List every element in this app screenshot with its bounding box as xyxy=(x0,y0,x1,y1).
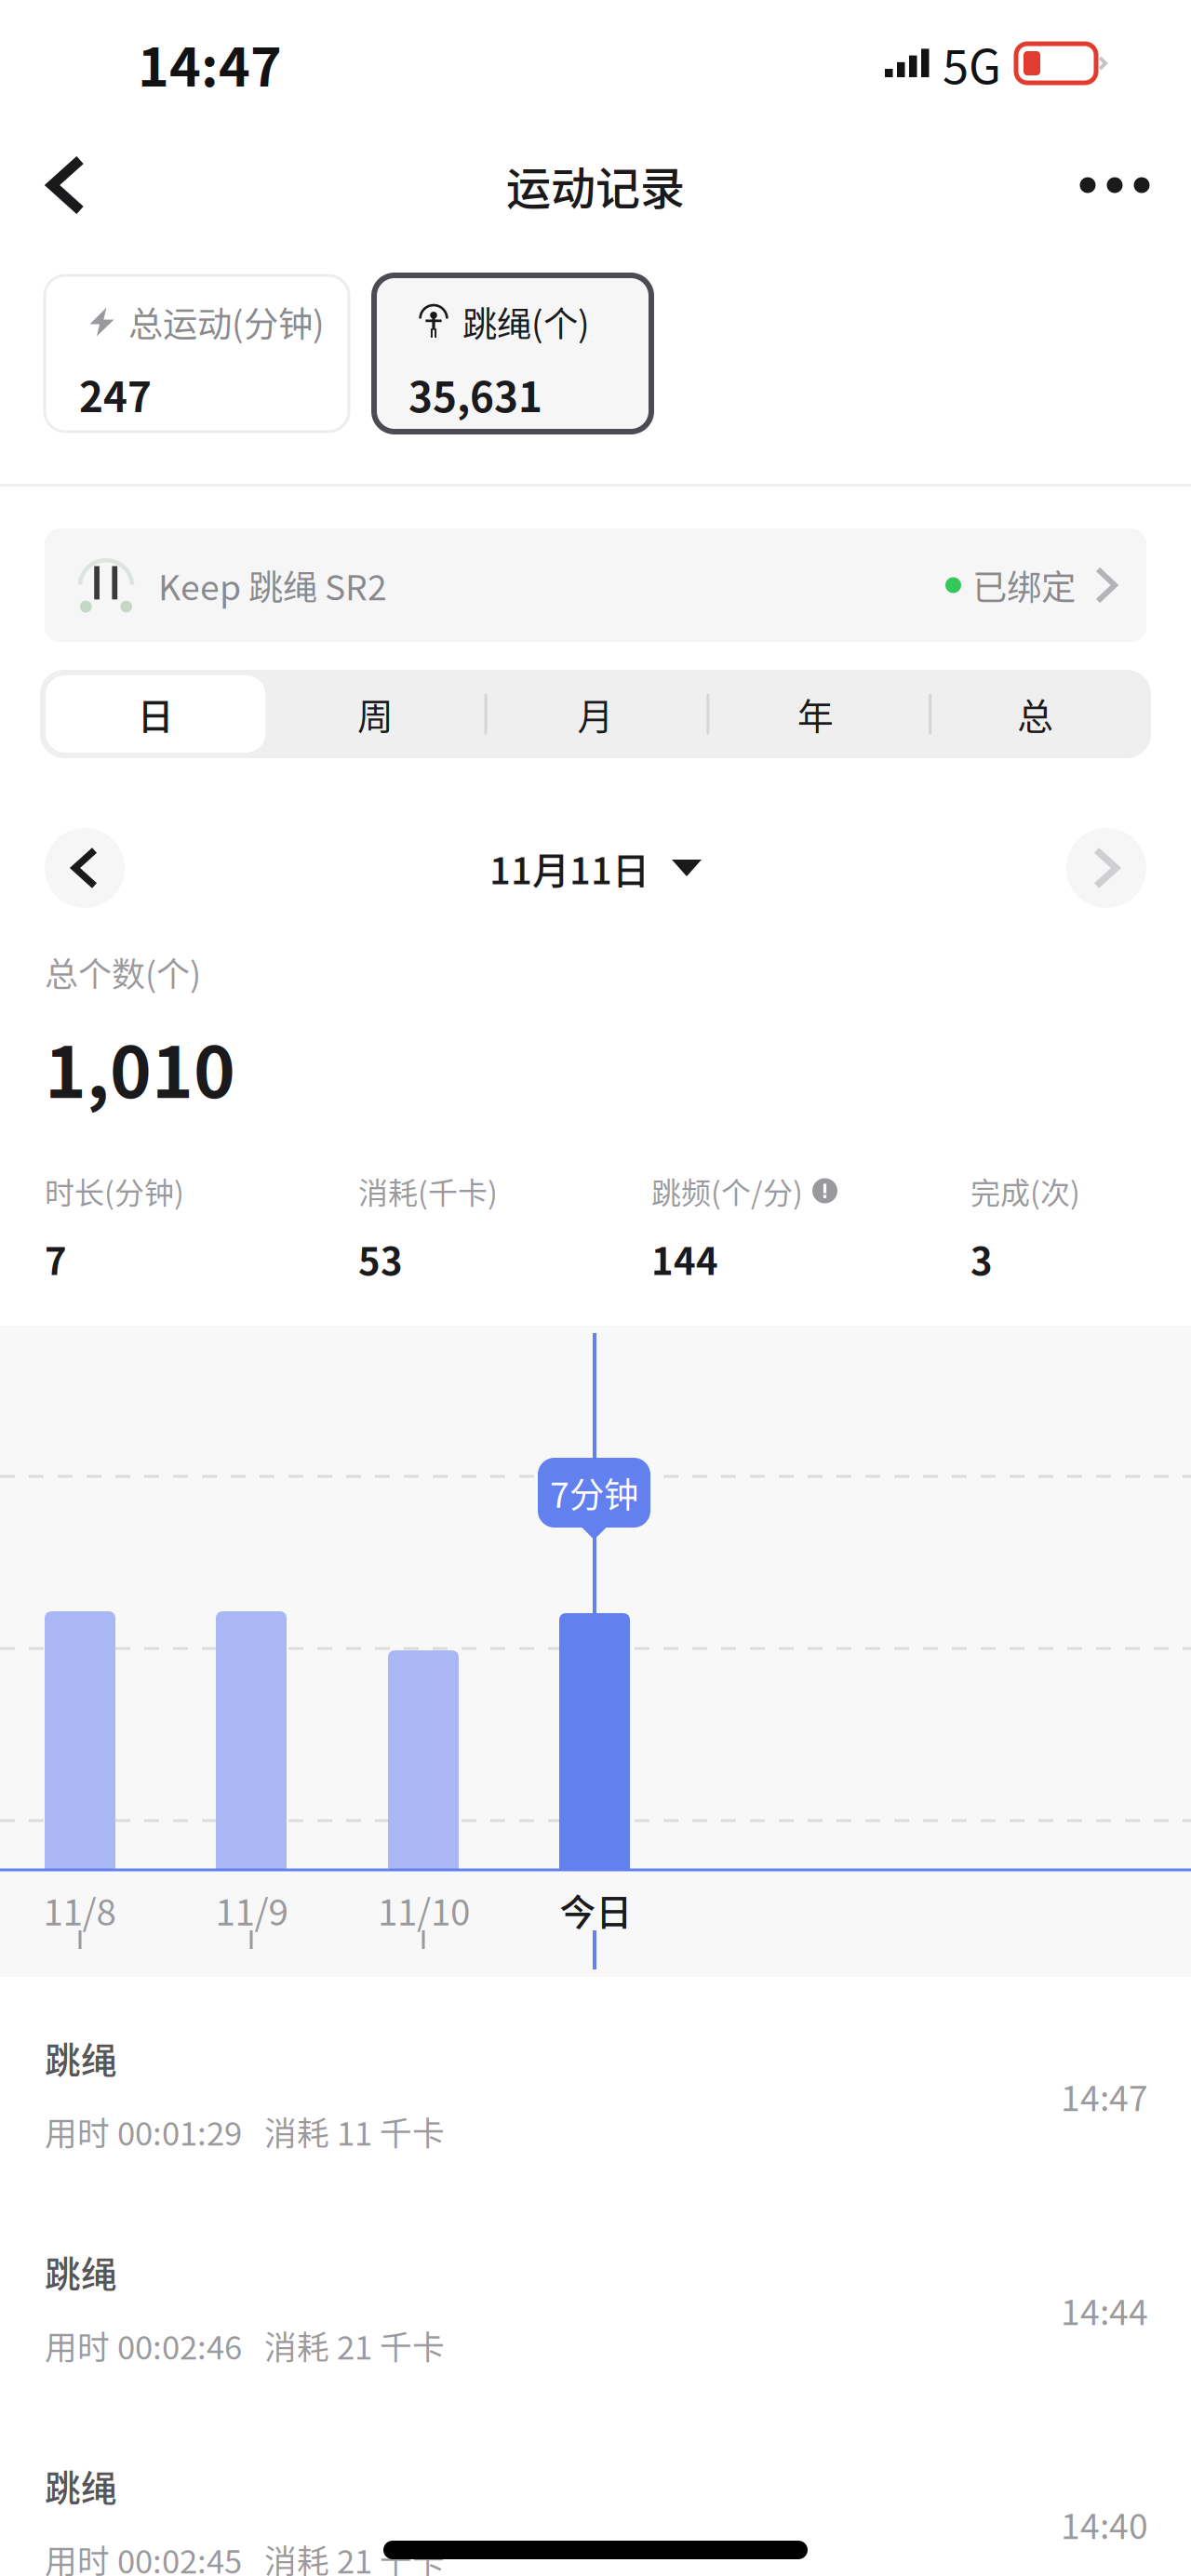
staticText: 11/9 xyxy=(215,1884,288,1936)
staticText: 用时 00:01:29 消耗 11 千卡 xyxy=(45,2108,445,2155)
button[interactable]: 日 xyxy=(46,675,266,753)
button[interactable]: Keep 跳绳 SR2 xyxy=(45,528,1146,642)
button[interactable]: 总 xyxy=(925,675,1145,753)
staticText: 运动记录 xyxy=(506,153,685,217)
staticText: 14:47 xyxy=(138,25,282,102)
button[interactable]: 跳绳 xyxy=(0,2424,1191,2576)
button[interactable]: 前一天 xyxy=(45,828,125,908)
button[interactable]: 年 xyxy=(705,675,925,753)
staticText: 年 xyxy=(797,688,834,740)
staticText: Keep 跳绳 SR2 xyxy=(158,560,387,610)
staticText: 跳绳 xyxy=(45,2460,117,2512)
staticText: 35,631 xyxy=(408,365,542,424)
button[interactable]: 返回 xyxy=(52,139,145,232)
staticText: 11/8 xyxy=(43,1884,116,1936)
button[interactable]: 总运动(分钟) xyxy=(45,275,349,432)
staticText: 7 xyxy=(45,1232,67,1286)
button[interactable]: 更多 xyxy=(1057,139,1150,232)
button[interactable]: 跳绳(个) xyxy=(374,275,651,432)
staticText: 消耗(千卡) xyxy=(358,1169,498,1212)
staticText: 14:40 xyxy=(1061,2499,1148,2549)
staticText: 跳频(个/分) xyxy=(651,1169,803,1212)
staticText: 月 xyxy=(577,688,614,740)
staticText: 1,010 xyxy=(45,1016,235,1118)
staticText: 总 xyxy=(1017,688,1054,740)
staticText: 247 xyxy=(79,365,152,424)
staticText: 3 xyxy=(970,1232,993,1286)
staticText: 总个数(个) xyxy=(45,948,201,996)
button[interactable]: 跳绳 xyxy=(0,1996,1191,2210)
staticText: 144 xyxy=(651,1232,718,1286)
staticText: 跳绳 xyxy=(45,2032,117,2084)
button[interactable]: 月 xyxy=(486,675,705,753)
staticText: 7分钟 xyxy=(550,1468,638,1518)
staticText: 今日 xyxy=(560,1884,632,1936)
staticText: 5G xyxy=(943,29,1001,97)
staticText: 用时 00:02:46 消耗 21 千卡 xyxy=(45,2322,445,2369)
staticText: 14:44 xyxy=(1061,2285,1148,2335)
button[interactable]: 后一天 xyxy=(1066,828,1146,908)
staticText: 时长(分钟) xyxy=(45,1169,184,1212)
staticText: 跳绳 xyxy=(45,2246,117,2298)
staticText: 日 xyxy=(137,688,174,740)
button[interactable]: 跳绳 xyxy=(0,2210,1191,2424)
staticText: 完成(次) xyxy=(970,1169,1080,1212)
staticText: 53 xyxy=(358,1232,403,1286)
staticText: 跳绳(个) xyxy=(462,297,590,347)
button[interactable]: 11月11日 xyxy=(489,841,702,895)
staticText: 周 xyxy=(357,688,394,740)
staticText: 已绑定 xyxy=(972,560,1076,610)
staticText: 11/10 xyxy=(378,1884,470,1936)
staticText: 总运动(分钟) xyxy=(128,297,325,347)
staticText: 11月11日 xyxy=(489,841,649,895)
staticText: 14:47 xyxy=(1061,2071,1148,2121)
staticText: 用时 00:02:45 消耗 21 千卡 xyxy=(45,2536,445,2576)
button[interactable]: 周 xyxy=(266,675,486,753)
